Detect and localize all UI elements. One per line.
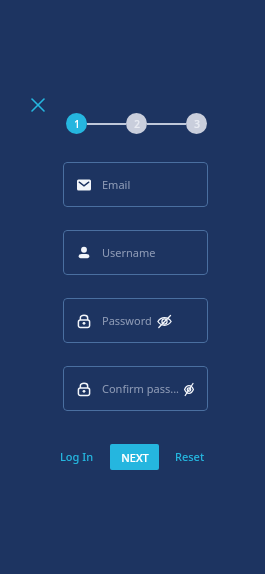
staticText: 3 (194, 117, 200, 131)
staticText: 2 (134, 117, 140, 131)
button[interactable]: Reset (175, 443, 205, 470)
button[interactable]: Close (26, 93, 50, 117)
button[interactable]: Log In (60, 443, 94, 470)
button[interactable]: Username (63, 230, 208, 275)
button[interactable]: Confirm pass... (63, 366, 208, 411)
button[interactable]: Toggle password visibility (184, 381, 194, 397)
staticText: 1 (74, 117, 80, 131)
button[interactable]: 3 (186, 113, 207, 134)
button[interactable]: 2 (126, 113, 147, 134)
staticText: Log In (60, 449, 94, 464)
staticText: Reset (175, 449, 205, 464)
button[interactable]: NEXT (110, 444, 159, 470)
staticText: NEXT (121, 450, 149, 465)
button[interactable]: Toggle password visibility (156, 313, 172, 329)
staticText: Email (102, 177, 131, 192)
staticText: Username (102, 245, 156, 260)
button[interactable]: Password (63, 298, 208, 343)
staticText: Confirm pass... (102, 381, 180, 396)
button[interactable]: Email (63, 162, 208, 207)
button[interactable]: 1 (66, 113, 87, 134)
staticText: Password (102, 313, 152, 328)
